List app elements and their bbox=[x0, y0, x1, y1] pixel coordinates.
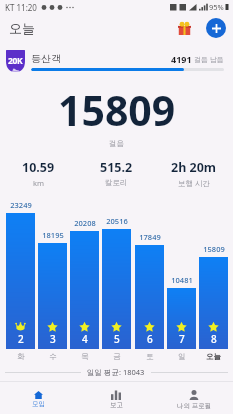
staticText: 20208 bbox=[74, 218, 96, 228]
staticText: 10481 bbox=[171, 275, 193, 285]
staticText: 보행 시간 bbox=[178, 178, 210, 188]
staticText: 8 bbox=[211, 332, 217, 346]
staticText: 목 bbox=[81, 352, 89, 361]
staticText: 2h 20m bbox=[171, 159, 217, 176]
staticText: 보고 bbox=[110, 401, 123, 409]
staticText: 걸음 bbox=[109, 139, 124, 148]
staticText: 23249 bbox=[10, 200, 32, 210]
button[interactable]: 금 20516 bbox=[102, 229, 131, 349]
button[interactable]: 오늘 15809 bbox=[199, 257, 228, 349]
button[interactable]: Badge 20K bbox=[6, 50, 25, 72]
staticText: 일일 평균: 18043 bbox=[87, 367, 145, 377]
staticText: 95% bbox=[209, 2, 224, 12]
staticText: KT 11:20 bbox=[5, 2, 37, 13]
staticText: 5 bbox=[114, 332, 120, 346]
staticText: 17849 bbox=[139, 232, 161, 242]
staticText: 515.2 bbox=[100, 159, 133, 176]
staticText: km bbox=[33, 178, 45, 188]
staticText: 6 bbox=[147, 332, 153, 346]
button[interactable]: 보고 bbox=[77, 388, 155, 411]
button[interactable]: 모임 bbox=[0, 388, 77, 411]
staticText: 오늘 bbox=[206, 352, 221, 361]
staticText: 7 bbox=[179, 332, 185, 346]
button[interactable]: 나의 프로필 bbox=[155, 388, 233, 411]
button[interactable]: Add bbox=[206, 18, 226, 38]
staticText: 나의 프로필 bbox=[177, 401, 212, 410]
button[interactable]: 화 23249 bbox=[6, 213, 35, 349]
staticText: 등산객 bbox=[31, 52, 61, 65]
staticText: 4191 bbox=[171, 53, 192, 65]
staticText: 일 bbox=[178, 352, 186, 361]
button[interactable]: 수 18195 bbox=[38, 243, 67, 349]
staticText: 18195 bbox=[42, 230, 64, 240]
button[interactable]: 일 10481 bbox=[167, 288, 196, 349]
staticText: 모임 bbox=[32, 400, 45, 408]
staticText: 화 bbox=[17, 352, 25, 361]
button[interactable]: Rewards bbox=[173, 17, 195, 39]
staticText: 오늘 bbox=[9, 20, 35, 36]
staticText: 토 bbox=[146, 352, 154, 361]
staticText: 15809 bbox=[58, 82, 176, 138]
button[interactable]: 토 17849 bbox=[135, 245, 164, 349]
staticText: 걸음 남음 bbox=[194, 55, 224, 65]
staticText: 수 bbox=[49, 352, 57, 361]
button[interactable]: 목 20208 bbox=[70, 231, 99, 349]
staticText: 2 bbox=[18, 332, 24, 346]
staticText: 15809 bbox=[203, 244, 225, 254]
staticText: 10.59 bbox=[22, 159, 55, 176]
staticText: 20K bbox=[8, 55, 23, 67]
staticText: 4 bbox=[82, 332, 88, 346]
staticText: 금 bbox=[113, 352, 121, 361]
staticText: 3 bbox=[50, 332, 56, 346]
staticText: 칼로리 bbox=[105, 178, 128, 187]
staticText: 20516 bbox=[106, 216, 128, 226]
